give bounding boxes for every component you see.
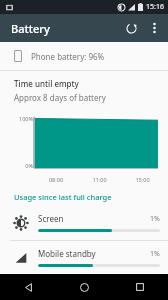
staticText: Mobile standby [38, 248, 150, 259]
staticText: 1% [150, 249, 160, 259]
staticText: Usage since last full charge [14, 192, 112, 202]
staticText: Screen [38, 213, 150, 224]
button[interactable]: Mobile standby [0, 241, 168, 274]
staticText: Battery [11, 21, 50, 36]
staticText: 08:00 [34, 176, 78, 183]
button[interactable]: Home [56, 274, 112, 300]
button[interactable]: Recent apps [112, 274, 168, 300]
staticText: 15:16 [146, 2, 164, 12]
button[interactable]: More options [143, 17, 165, 39]
staticText: Approx 8 days of battery [14, 92, 106, 103]
button[interactable]: Time until empty [0, 71, 168, 107]
staticText: Phone battery: 96% [31, 51, 105, 62]
staticText: 100% [11, 115, 33, 122]
staticText: Time until empty [14, 78, 79, 89]
staticText: 15:00 [121, 176, 164, 183]
button[interactable]: Back [0, 274, 56, 300]
button[interactable]: Phone battery: 96% [0, 42, 168, 70]
button[interactable]: Screen [0, 205, 168, 240]
button[interactable]: Refresh [119, 16, 143, 40]
staticText: 11:00 [78, 176, 121, 183]
staticText: 1% [150, 214, 160, 224]
staticText: 0% [11, 162, 33, 169]
